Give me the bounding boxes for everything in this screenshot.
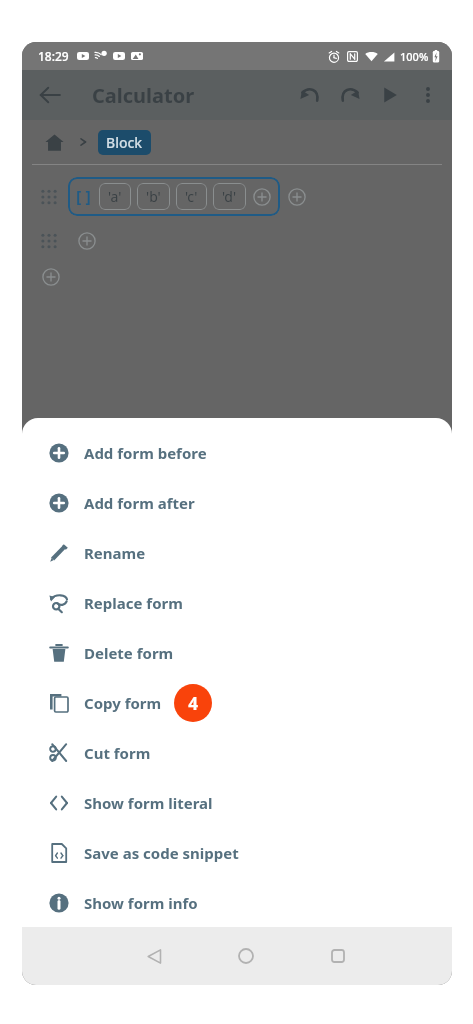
staticText: Replace form <box>84 593 183 613</box>
staticText: 18:29 <box>38 48 69 64</box>
staticText: 4 <box>188 692 198 715</box>
staticText: Show form literal <box>84 793 213 813</box>
button[interactable]: Delete form <box>22 628 452 678</box>
button[interactable]: 'c' <box>176 183 207 210</box>
button[interactable]: Show form info <box>22 878 452 927</box>
button[interactable]: Add form before <box>22 428 452 478</box>
button[interactable]: Add form after <box>22 478 452 528</box>
staticText: Delete form <box>84 643 174 663</box>
button[interactable]: Show form literal <box>22 778 452 828</box>
staticText: Copy form <box>84 693 162 713</box>
staticText: Add form after <box>84 493 195 513</box>
button[interactable]: 'a' <box>99 183 131 210</box>
button[interactable]: Home <box>40 128 68 156</box>
staticText: Block <box>106 133 143 152</box>
staticText: 'd' <box>222 187 237 206</box>
button[interactable]: [ ] <box>68 177 280 216</box>
staticText: 100% <box>400 49 429 64</box>
button[interactable]: Save as code snippet <box>22 828 452 878</box>
staticText: 'c' <box>185 187 198 206</box>
staticText: Show form info <box>84 893 198 913</box>
button[interactable]: Add form <box>76 230 98 252</box>
staticText: Save as code snippet <box>84 843 239 863</box>
staticText: Cut form <box>84 743 151 763</box>
button[interactable]: Redo <box>330 75 370 115</box>
button[interactable]: Home <box>224 934 268 978</box>
button[interactable]: 'b' <box>137 183 170 210</box>
button[interactable]: Block <box>98 130 151 155</box>
staticText: Add form before <box>84 443 207 463</box>
button[interactable]: More options <box>410 77 446 113</box>
button[interactable]: Undo <box>290 75 330 115</box>
staticText: 'a' <box>108 187 122 206</box>
button[interactable]: Add form <box>286 186 308 208</box>
staticText: [ ] <box>76 186 91 208</box>
staticText: Calculator <box>92 82 195 109</box>
button[interactable]: Copy form <box>22 678 452 728</box>
button[interactable]: Add item <box>252 187 272 207</box>
staticText: Rename <box>84 543 146 563</box>
button[interactable]: 'd' <box>213 183 246 210</box>
button[interactable]: Cut form <box>22 728 452 778</box>
button[interactable]: Recent apps <box>316 934 360 978</box>
button[interactable]: Replace form <box>22 578 452 628</box>
button[interactable]: Add form <box>40 266 62 288</box>
staticText: 'b' <box>146 187 161 206</box>
button[interactable]: Run <box>370 75 410 115</box>
button[interactable]: Back <box>30 75 70 115</box>
button[interactable]: Rename <box>22 528 452 578</box>
button[interactable]: Back <box>132 934 176 978</box>
